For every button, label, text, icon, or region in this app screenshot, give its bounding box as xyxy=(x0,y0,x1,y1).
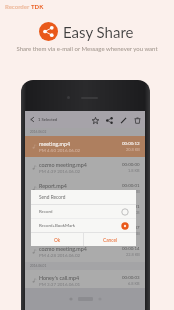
staticText: 2016.06.02 xyxy=(30,130,47,134)
staticText: PM 4:39 2016.06.02 xyxy=(39,169,81,174)
staticText: PM 4:29 2016.06.02 xyxy=(39,211,81,216)
staticText: Honey's call.mp4 xyxy=(39,275,80,281)
staticText: PM 4:29 2016.06.02 xyxy=(39,232,81,237)
staticText: 9.8 KB xyxy=(128,210,140,215)
button[interactable]: cozmo meeting.mp4 xyxy=(25,241,145,262)
staticText: 1 Selected xyxy=(38,117,58,122)
staticText: 00:00:01 xyxy=(122,183,140,188)
staticText: Recorder xyxy=(5,3,31,10)
staticText: PM 4:28 2016.06.02 xyxy=(39,253,81,258)
staticText: 1.8 KB xyxy=(128,168,140,173)
staticText: TDK xyxy=(31,3,44,10)
staticText: 44.3 KB xyxy=(126,231,140,236)
button[interactable]: Report.mp4 xyxy=(25,178,145,199)
button[interactable]: Ok xyxy=(31,233,83,246)
staticText: meeting.mp4 xyxy=(39,141,71,147)
button[interactable]: 1 Selected xyxy=(25,111,61,128)
button[interactable]: Cancel xyxy=(84,233,136,246)
staticText: 00:00:00 xyxy=(122,162,140,167)
staticText: 00:00:14 xyxy=(122,246,140,251)
staticText: cozmo meeting.mp4 xyxy=(39,162,87,168)
staticText: Send Record xyxy=(39,194,66,200)
button[interactable]: Delete xyxy=(130,113,144,127)
button[interactable]: Favorite xyxy=(88,113,102,127)
staticText: PM 4:50 2016.06.02 xyxy=(39,148,81,153)
staticText: Cancel xyxy=(103,237,118,243)
button[interactable]: New record.mp4 xyxy=(25,220,145,241)
button[interactable]: Record xyxy=(31,205,136,218)
staticText: 22.8 KB xyxy=(126,189,140,194)
staticText: cozmo meeting.mp4 xyxy=(39,246,87,252)
staticText: 20.8 KB xyxy=(126,147,140,152)
staticText: Share them via e-mail or Message wheneve… xyxy=(0,45,174,52)
staticText: New record.mp4 xyxy=(39,225,79,231)
staticText: Record+BookMark xyxy=(39,223,76,228)
button[interactable]: Interview.mp4 xyxy=(25,199,145,220)
staticText: Report.mp4 xyxy=(39,183,67,189)
staticText: 6.8 KB xyxy=(128,281,140,286)
staticText: PM 3:37 2016.06.01 xyxy=(39,282,81,287)
staticText: Interview.mp4 xyxy=(39,204,74,210)
staticText: 00:00:37 xyxy=(122,225,140,230)
staticText: Record xyxy=(39,209,53,214)
button[interactable]: Record+BookMark xyxy=(31,219,136,232)
staticText: Easy Share xyxy=(63,23,134,41)
staticText: 2016.06.01 xyxy=(30,264,47,268)
button[interactable]: Rename xyxy=(116,113,130,127)
staticText: Ok xyxy=(54,237,61,243)
button[interactable]: meeting.mp4 xyxy=(25,136,145,157)
staticText: 00:00:03 xyxy=(122,275,140,280)
button[interactable]: Share xyxy=(102,113,116,127)
staticText: 22.8 KB xyxy=(126,252,140,257)
button[interactable]: Honey's call.mp4 xyxy=(25,270,145,291)
button[interactable]: cozmo meeting.mp4 xyxy=(25,157,145,178)
staticText: 00:00:12 xyxy=(122,141,140,146)
staticText: 00:00:01 xyxy=(122,204,140,209)
